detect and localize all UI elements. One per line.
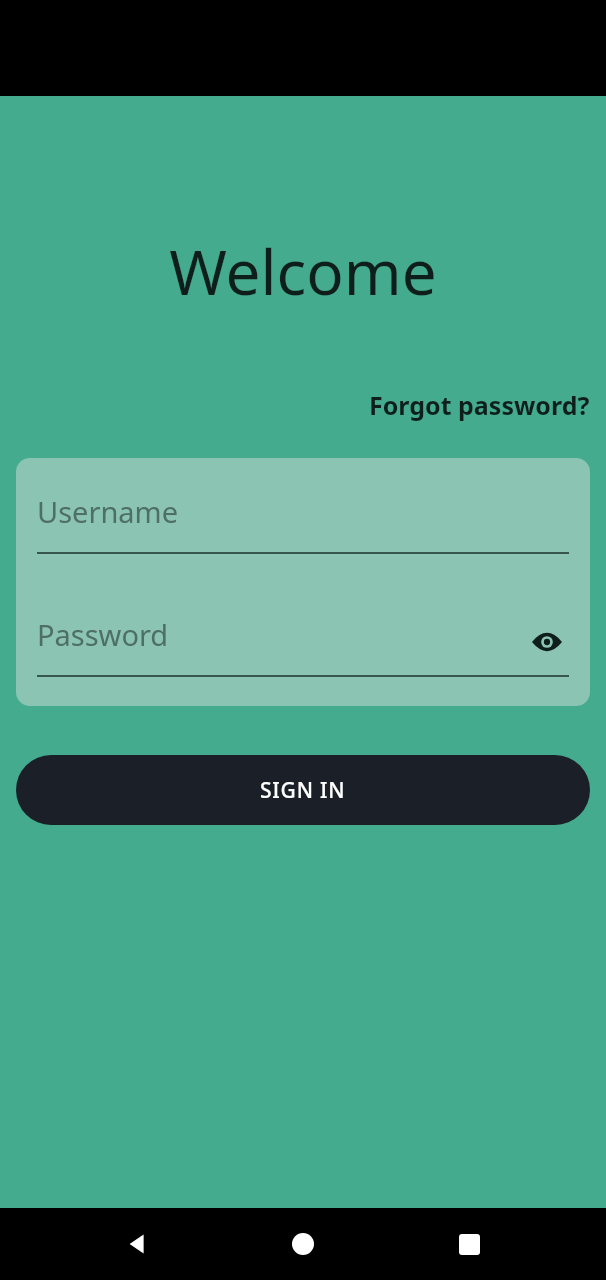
staticText: Welcome (0, 229, 606, 313)
button[interactable]: Forgot password? (353, 384, 606, 426)
button[interactable]: Back (110, 1216, 166, 1272)
staticText: Password (37, 615, 169, 654)
button[interactable] (37, 615, 569, 677)
staticText: Username (37, 492, 179, 531)
button[interactable]: Show password (525, 620, 569, 664)
button[interactable]: Username (37, 492, 569, 554)
button[interactable]: Home (275, 1216, 331, 1272)
button[interactable]: Recent apps (441, 1216, 497, 1272)
staticText: Forgot password? (369, 388, 590, 422)
button[interactable]: SIGN IN (16, 755, 590, 825)
staticText: SIGN IN (260, 776, 346, 805)
